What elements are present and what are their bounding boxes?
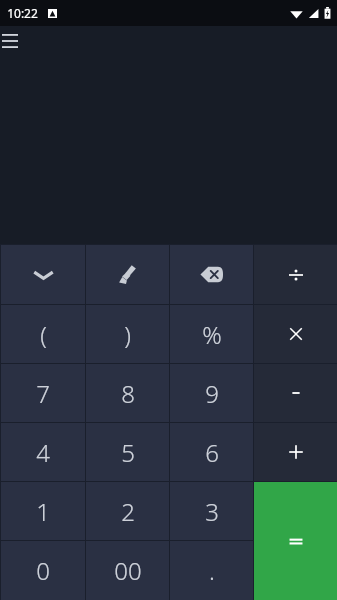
staticText: 6 [205, 436, 219, 469]
staticText: 2 [121, 495, 135, 528]
button[interactable]: Collapse [1, 245, 85, 304]
button[interactable]: Divide [254, 245, 337, 304]
staticText: 00 [114, 554, 142, 587]
button[interactable]: Menu [0, 26, 22, 56]
button[interactable]: Equals [254, 482, 337, 600]
button[interactable]: Multiply [254, 305, 337, 363]
button[interactable]: 8 [86, 364, 169, 422]
staticText: 0 [36, 554, 50, 587]
button[interactable]: Plus [254, 423, 337, 481]
button[interactable]: Backspace [170, 245, 253, 304]
staticText: ) [124, 318, 131, 351]
staticText: % [202, 318, 222, 351]
button[interactable]: 1 [1, 482, 85, 540]
button[interactable]: 00 [86, 541, 169, 600]
button[interactable]: Minus [254, 364, 337, 422]
button[interactable]: 0 [1, 541, 85, 600]
staticText: 3 [205, 495, 219, 528]
button[interactable]: 4 [1, 423, 85, 481]
button[interactable]: 3 [170, 482, 253, 540]
staticText: 4 [36, 436, 50, 469]
staticText: 7 [36, 377, 50, 410]
button[interactable]: 9 [170, 364, 253, 422]
staticText: 10:22 [7, 5, 38, 21]
button[interactable]: ( [1, 305, 85, 363]
button[interactable]: 5 [86, 423, 169, 481]
staticText: 9 [205, 377, 219, 410]
staticText: 1 [36, 495, 50, 528]
button[interactable]: 7 [1, 364, 85, 422]
button[interactable]: 6 [170, 423, 253, 481]
staticText: . [209, 554, 215, 587]
button[interactable]: ) [86, 305, 169, 363]
staticText: 8 [121, 377, 135, 410]
button[interactable]: % [170, 305, 253, 363]
button[interactable]: 2 [86, 482, 169, 540]
button[interactable]: Clear all [86, 245, 169, 304]
staticText: 5 [121, 436, 135, 469]
button[interactable]: . [170, 541, 253, 600]
staticText: ( [40, 318, 47, 351]
